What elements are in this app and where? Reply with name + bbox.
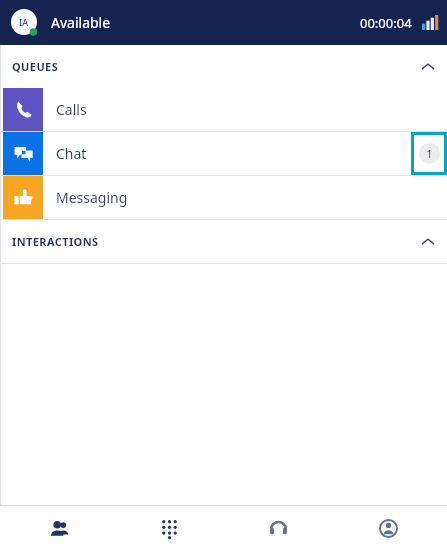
staticText: Available <box>51 13 111 32</box>
staticText: INTERACTIONS <box>12 234 99 249</box>
staticText: 00:00:04 <box>360 14 412 32</box>
button[interactable]: QUEUES <box>0 45 447 88</box>
button[interactable]: Chat <box>0 132 447 175</box>
button[interactable]: Contacts <box>9 506 109 551</box>
staticText: IA <box>19 16 29 28</box>
staticText: Calls <box>56 100 87 119</box>
staticText: Messaging <box>56 188 128 207</box>
button[interactable]: Messaging <box>0 176 447 219</box>
staticText: QUEUES <box>12 59 59 74</box>
staticText: 1 <box>426 146 433 161</box>
button[interactable]: Dialpad <box>119 506 219 551</box>
button[interactable]: Headset <box>228 506 328 551</box>
staticText: Chat <box>56 144 87 163</box>
button[interactable]: Calls <box>0 88 447 131</box>
button[interactable]: 1 <box>411 132 447 175</box>
button[interactable]: INTERACTIONS <box>0 220 447 263</box>
button[interactable]: Profile <box>338 506 438 551</box>
